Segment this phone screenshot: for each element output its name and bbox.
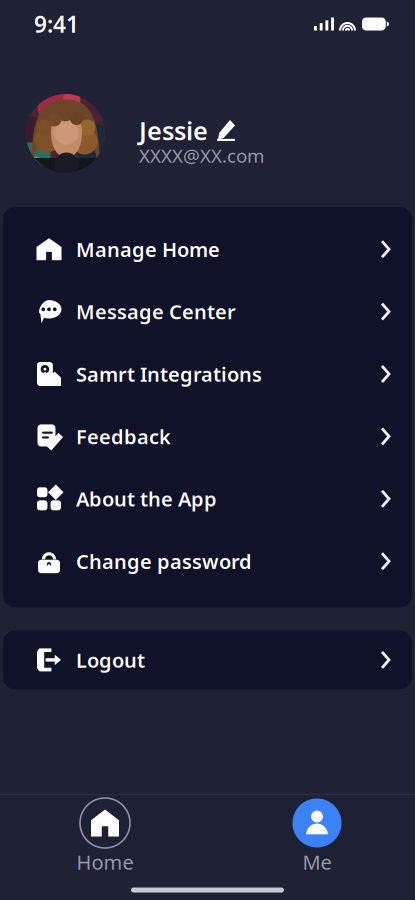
staticText: Home	[76, 849, 133, 875]
button[interactable]: Manage Home	[3, 218, 412, 280]
staticText: Jessie	[139, 114, 208, 147]
button[interactable]: Change password	[3, 530, 412, 592]
staticText: Logout	[76, 647, 145, 673]
staticText: 9:41	[34, 9, 79, 39]
staticText: XXXX@XX.com	[139, 143, 264, 168]
button[interactable]: Message Center	[3, 280, 412, 343]
staticText: Change password	[76, 548, 252, 574]
staticText: Samrt Integrations	[76, 361, 262, 387]
button[interactable]: Samrt Integrations	[3, 343, 412, 405]
button[interactable]: Feedback	[3, 405, 412, 468]
button[interactable]: Me	[257, 798, 377, 876]
button[interactable]: Logout	[3, 629, 412, 691]
button[interactable]: About the App	[3, 468, 412, 530]
staticText: Feedback	[76, 423, 171, 450]
staticText: Message Center	[76, 298, 236, 325]
button[interactable]: Home	[45, 798, 165, 876]
staticText: Me	[302, 849, 331, 875]
staticText: About the App	[76, 485, 217, 512]
staticText: Manage Home	[76, 236, 220, 262]
